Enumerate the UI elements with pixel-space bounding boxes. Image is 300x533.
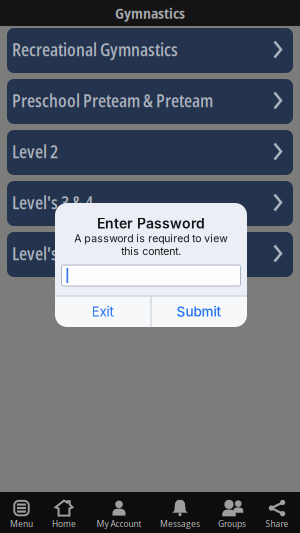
staticText: Level's 3 & 4 (12, 191, 93, 214)
button[interactable]: Preschool Preteam & Preteam (7, 79, 293, 124)
button[interactable]: Submit (151, 296, 246, 326)
staticText: Preschool Preteam & Preteam (12, 89, 213, 112)
button[interactable]: Messages (150, 498, 210, 530)
staticText: Level 2 (12, 140, 58, 163)
staticText: Messages (160, 517, 200, 530)
button[interactable]: Level's 3 & 4 (7, 181, 293, 226)
button[interactable]: Level's 5-10 (7, 232, 293, 277)
staticText: Level's 5-10 (12, 242, 90, 265)
staticText: Exit (91, 303, 113, 320)
button[interactable]: Menu (0, 498, 51, 530)
staticText: Home (52, 517, 76, 530)
button[interactable]: Groups (202, 498, 262, 530)
staticText: Menu (10, 517, 33, 530)
button[interactable]: Share (247, 498, 300, 530)
staticText: Recreational Gymnastics (12, 38, 178, 61)
button[interactable]: Exit (55, 296, 150, 326)
staticText: Gymnastics (115, 3, 185, 23)
staticText: A password is required to view this cont… (74, 232, 228, 257)
button[interactable]: My Account (89, 498, 149, 530)
staticText: Enter Password (97, 215, 205, 232)
staticText: My Account (96, 517, 141, 530)
button[interactable]: Recreational Gymnastics (7, 28, 293, 73)
button[interactable]: Home (34, 498, 94, 530)
staticText: Groups (218, 517, 246, 530)
staticText: Submit (176, 303, 221, 320)
staticText: Share (265, 517, 288, 530)
button[interactable]: Level 2 (7, 130, 293, 175)
